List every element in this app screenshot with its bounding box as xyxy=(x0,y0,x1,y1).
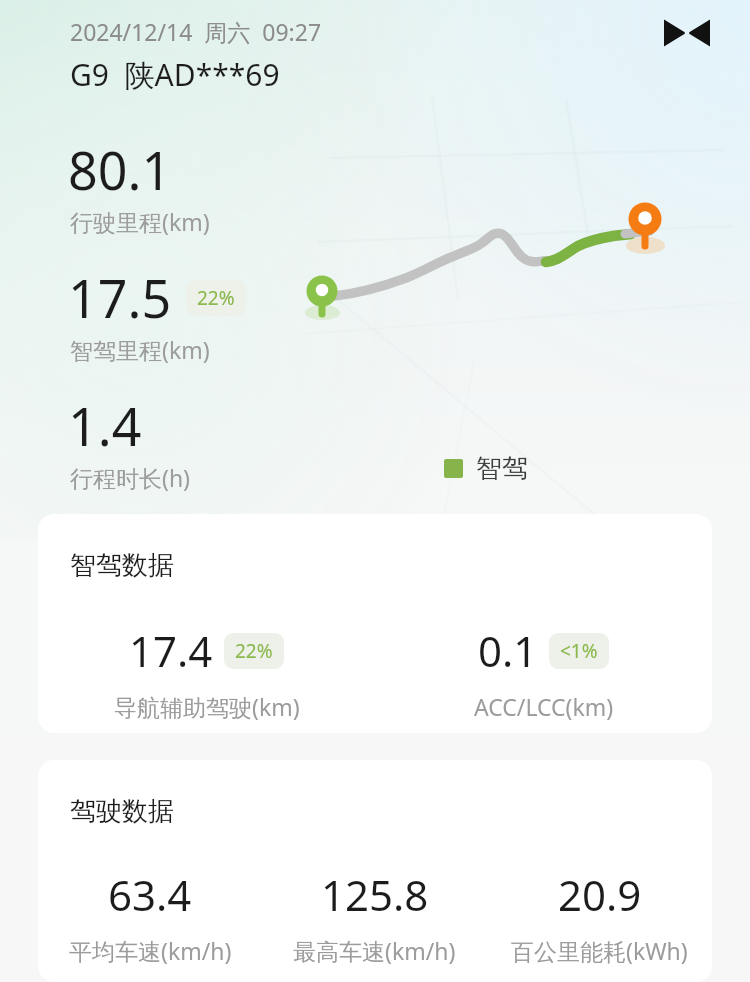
staticText: 最高车速(km/h) xyxy=(293,935,456,966)
button[interactable]: 智驾数据 xyxy=(38,514,712,733)
button[interactable]: 驾驶数据 xyxy=(38,760,712,982)
staticText: 智驾数据 xyxy=(70,549,174,582)
staticText: 2024/12/14 周六 09:27 xyxy=(70,16,322,47)
staticText: 导航辅助驾驶(km) xyxy=(114,691,300,722)
staticText: 百公里能耗(kWh) xyxy=(511,935,688,966)
staticText: 驾驶数据 xyxy=(70,795,174,828)
staticText: 行驶里程(km) xyxy=(70,206,210,237)
staticText: 22% xyxy=(197,285,235,311)
staticText: ACC/LCC(km) xyxy=(474,691,614,722)
staticText: 22% xyxy=(235,638,273,664)
staticText: 平均车速(km/h) xyxy=(69,935,232,966)
staticText: 智驾 xyxy=(476,452,528,485)
staticText: 125.8 xyxy=(321,866,429,923)
staticText: <1% xyxy=(560,638,598,664)
staticText: 80.1 xyxy=(68,134,172,205)
staticText: 63.4 xyxy=(108,866,192,923)
staticText: 17.5 xyxy=(68,262,172,333)
staticText: 行程时长(h) xyxy=(70,462,191,493)
staticText: 智驾里程(km) xyxy=(70,334,210,365)
staticText: 0.1 xyxy=(478,622,538,679)
button[interactable]: XPeng logo xyxy=(655,8,719,58)
staticText: 1.4 xyxy=(68,390,142,461)
staticText: 17.4 xyxy=(129,622,213,679)
staticText: G9 陕AD***69 xyxy=(70,54,280,95)
staticText: 20.9 xyxy=(558,866,642,923)
